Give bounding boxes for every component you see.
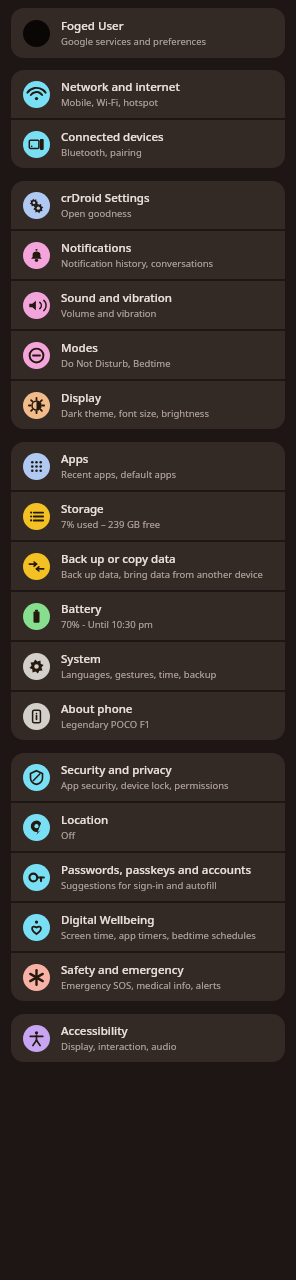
button[interactable]: Modes (11, 331, 285, 379)
staticText: Legendary POCO F1 (61, 718, 151, 731)
staticText: Display (61, 390, 101, 406)
staticText: System (61, 651, 101, 667)
button[interactable]: Sound and vibration (11, 281, 285, 329)
button[interactable]: Connected devices (11, 120, 285, 168)
staticText: App security, device lock, permissions (61, 779, 229, 792)
staticText: Foged User (61, 18, 124, 34)
staticText: Sound and vibration (61, 290, 173, 306)
staticText: Back up data, bring data from another de… (61, 568, 263, 581)
button[interactable]: System (11, 642, 285, 690)
staticText: Volume and vibration (61, 307, 157, 320)
staticText: Safety and emergency (61, 962, 184, 978)
staticText: Apps (61, 451, 89, 467)
staticText: Security and privacy (61, 762, 172, 778)
button[interactable]: Notifications (11, 231, 285, 279)
staticText: Location (61, 812, 109, 828)
button[interactable]: Display (11, 381, 285, 429)
staticText: Do Not Disturb, Bedtime (61, 357, 171, 370)
staticText: Connected devices (61, 129, 164, 145)
staticText: Mobile, Wi-Fi, hotspot (61, 96, 158, 109)
staticText: Screen time, app timers, bedtime schedul… (61, 929, 256, 942)
button[interactable]: Storage (11, 492, 285, 540)
button[interactable]: About phone (11, 692, 285, 740)
button[interactable]: Passwords, passkeys and accounts (11, 853, 285, 901)
button[interactable]: Foged User (11, 8, 285, 58)
staticText: Open goodness (61, 207, 132, 220)
staticText: Suggestions for sign-in and autofill (61, 879, 217, 892)
staticText: Battery (61, 601, 102, 617)
button[interactable]: Digital Wellbeing (11, 903, 285, 951)
staticText: Network and internet (61, 79, 180, 95)
button[interactable]: Network and internet (11, 70, 285, 118)
button[interactable]: Safety and emergency (11, 953, 285, 1001)
button[interactable]: Accessibility (11, 1014, 285, 1062)
staticText: Back up or copy data (61, 551, 176, 567)
button[interactable]: Location (11, 803, 285, 851)
staticText: Bluetooth, pairing (61, 146, 142, 159)
staticText: Emergency SOS, medical info, alerts (61, 979, 221, 992)
button[interactable]: crDroid Settings (11, 181, 285, 229)
staticText: Notification history, conversations (61, 257, 214, 270)
button[interactable]: Security and privacy (11, 753, 285, 801)
staticText: About phone (61, 701, 133, 717)
staticText: 7% used – 239 GB free (61, 518, 161, 531)
staticText: Passwords, passkeys and accounts (61, 862, 252, 878)
staticText: Dark theme, font size, brightness (61, 407, 209, 420)
staticText: crDroid Settings (61, 190, 150, 206)
button[interactable]: Apps (11, 442, 285, 490)
staticText: Google services and preferences (61, 35, 207, 48)
staticText: Languages, gestures, time, backup (61, 668, 217, 681)
button[interactable]: Back up or copy data (11, 542, 285, 590)
staticText: Digital Wellbeing (61, 912, 155, 928)
staticText: 70% - Until 10:30 pm (61, 618, 153, 631)
staticText: Display, interaction, audio (61, 1040, 177, 1053)
staticText: Accessibility (61, 1023, 128, 1039)
staticText: Storage (61, 501, 104, 517)
staticText: Modes (61, 340, 98, 356)
staticText: Off (61, 829, 75, 842)
staticText: Notifications (61, 240, 132, 256)
button[interactable]: Battery (11, 592, 285, 640)
staticText: Recent apps, default apps (61, 468, 177, 481)
